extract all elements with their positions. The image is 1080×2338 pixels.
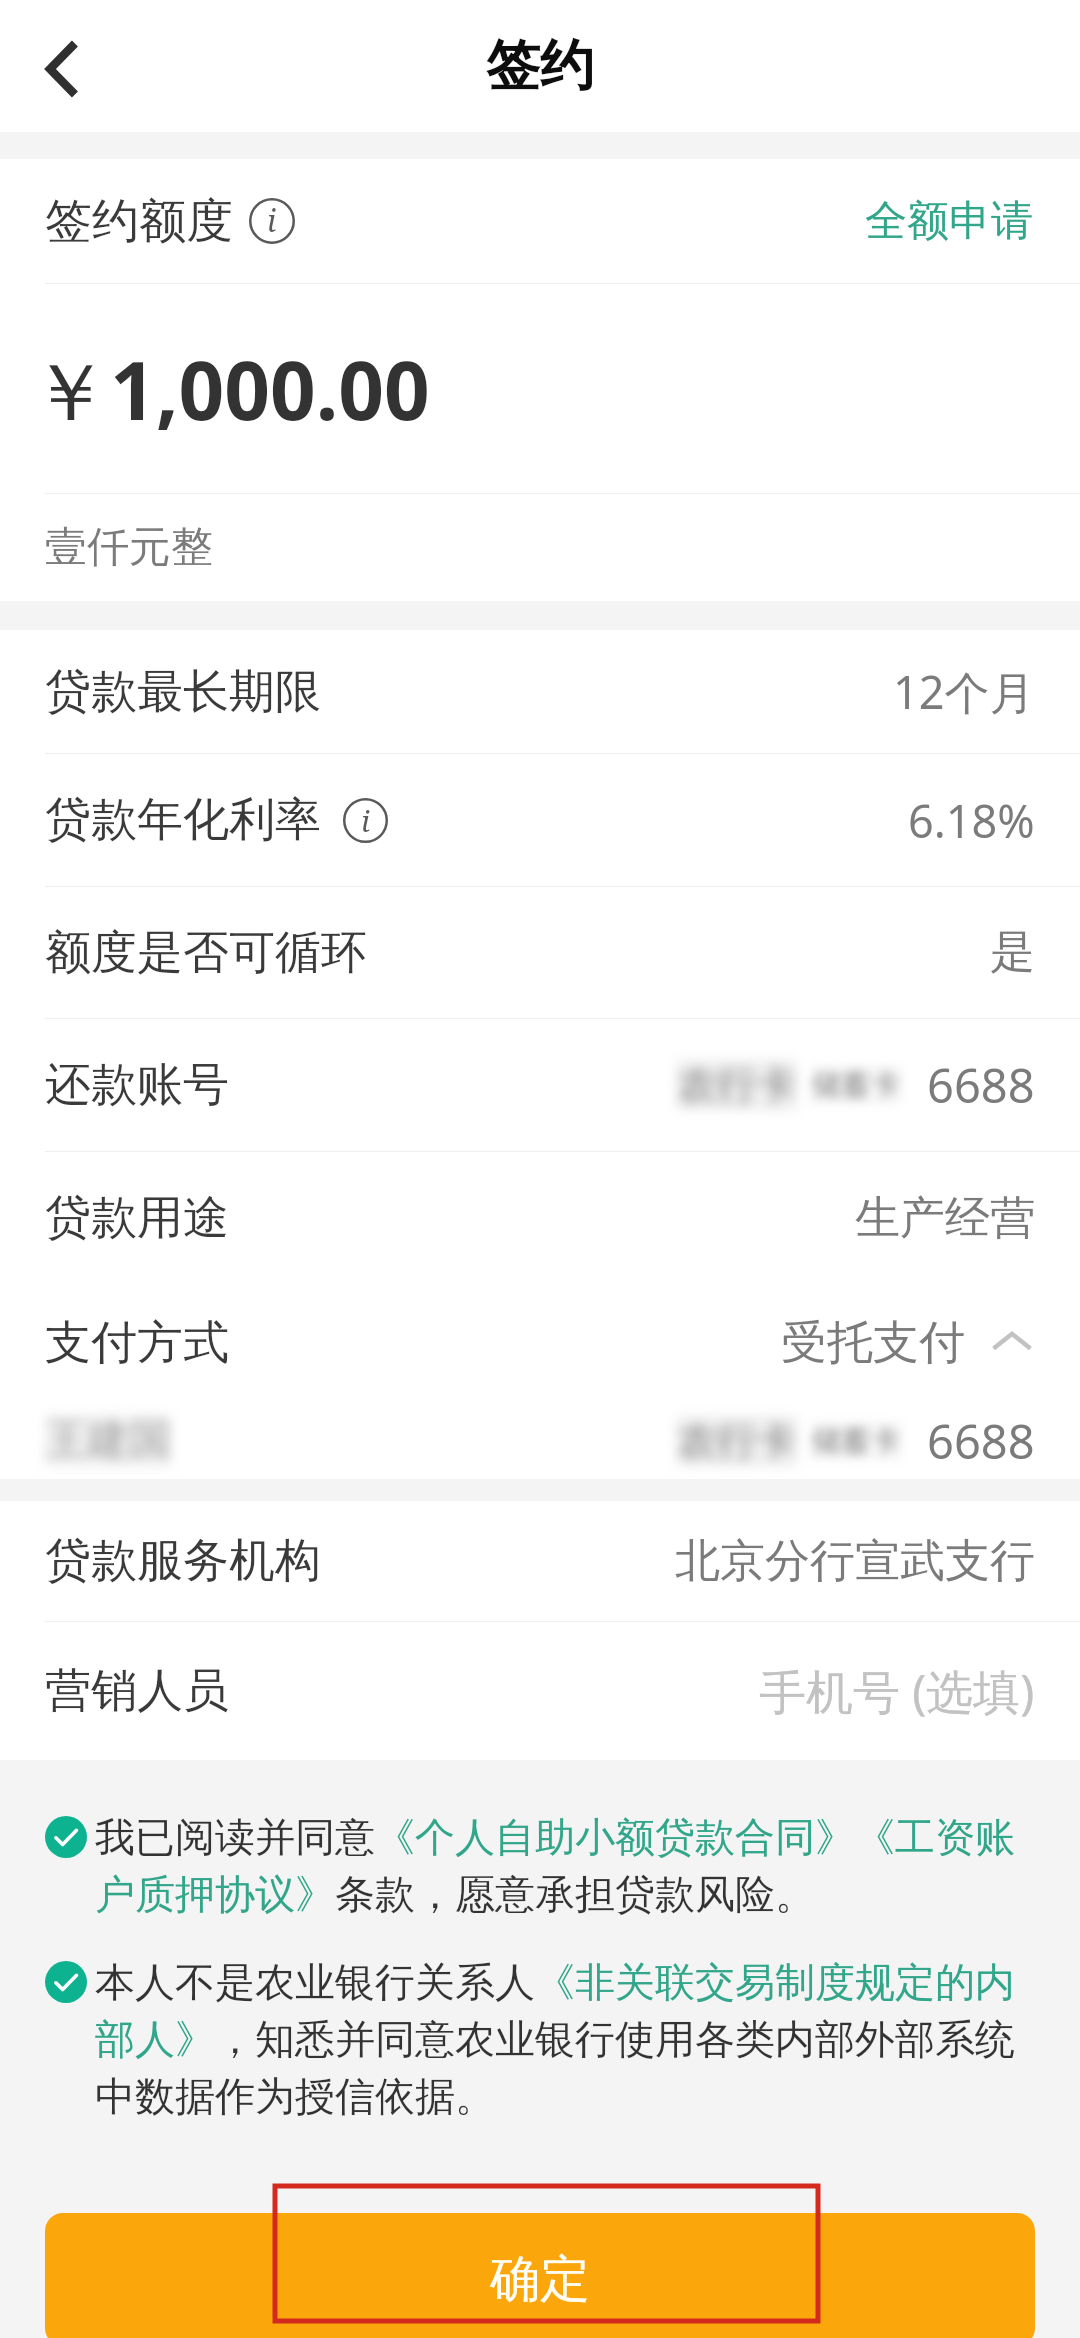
button[interactable]: 额度是否可循环 <box>0 887 1080 1018</box>
staticText: 壹仟元整 <box>45 521 213 574</box>
button[interactable]: Back <box>19 27 103 111</box>
staticText: ￥1,000.00 <box>30 334 430 443</box>
button[interactable]: More info <box>343 798 388 843</box>
staticText: 支付方式 <box>45 1314 229 1372</box>
other: Confirm not a related party <box>45 1961 87 2003</box>
button[interactable]: 营销人员 <box>0 1622 1080 1760</box>
staticText: 储蓄卡 <box>811 1066 901 1104</box>
button[interactable]: Agree to loan contract terms <box>45 1808 1035 1922</box>
staticText: 全额申请 <box>865 195 1033 248</box>
staticText: 手机号 (选填) <box>759 1659 1035 1723</box>
staticText: 农行卡 <box>677 1416 797 1466</box>
staticText: 本人不是农业银行关系人《非关联交易制度规定的内部人》，知悉并同意农业银行使用各类… <box>95 1953 1035 2124</box>
staticText: 贷款服务机构 <box>45 1532 321 1590</box>
staticText: 确定 <box>490 2248 590 2311</box>
staticText: 12个月 <box>893 661 1035 722</box>
staticText: 储蓄卡 <box>811 1422 901 1460</box>
button[interactable]: 王建国 <box>0 1402 1080 1479</box>
button[interactable]: 还款账号 <box>0 1019 1080 1151</box>
button[interactable]: 贷款年化利率 <box>0 754 1080 886</box>
button[interactable]: 贷款用途 <box>0 1152 1080 1284</box>
staticText: 我已阅读并同意《个人自助小额贷款合同》《工资账户质押协议》条款，愿意承担贷款风险… <box>95 1808 1035 1922</box>
button[interactable]: Credit limit info <box>249 198 295 244</box>
staticText: i <box>267 200 277 241</box>
button[interactable]: 贷款最长期限 <box>0 630 1080 753</box>
staticText: 还款账号 <box>45 1056 229 1114</box>
button[interactable]: Confirm not a related party <box>45 1953 1035 2124</box>
staticText: 王建国 <box>45 1414 171 1467</box>
staticText: 农行卡 <box>677 1060 797 1110</box>
staticText: 北京分行宣武支行 <box>675 1533 1035 1590</box>
staticText: 贷款年化利率 <box>45 791 321 849</box>
staticText: 贷款最长期限 <box>45 663 321 721</box>
button[interactable]: 贷款服务机构 <box>0 1501 1080 1621</box>
staticText: 签约额度 <box>45 192 233 251</box>
staticText: 贷款用途 <box>45 1189 229 1247</box>
staticText: 是 <box>990 924 1035 981</box>
staticText: 签约 <box>486 32 594 100</box>
button[interactable]: 确定 <box>45 2213 1035 2338</box>
staticText: i <box>361 800 371 840</box>
button[interactable]: 全额申请 <box>863 189 1035 254</box>
staticText: 6688 <box>927 1053 1035 1117</box>
staticText: 生产经营 <box>855 1190 1035 1247</box>
button[interactable]: 支付方式 <box>0 1284 1080 1402</box>
staticText: 6688 <box>927 1409 1035 1473</box>
staticText: 额度是否可循环 <box>45 924 367 982</box>
staticText: 营销人员 <box>45 1662 229 1720</box>
other: Agree to loan contract terms <box>45 1816 87 1858</box>
staticText: 6.18% <box>908 790 1035 851</box>
staticText: 受托支付 <box>781 1314 965 1372</box>
